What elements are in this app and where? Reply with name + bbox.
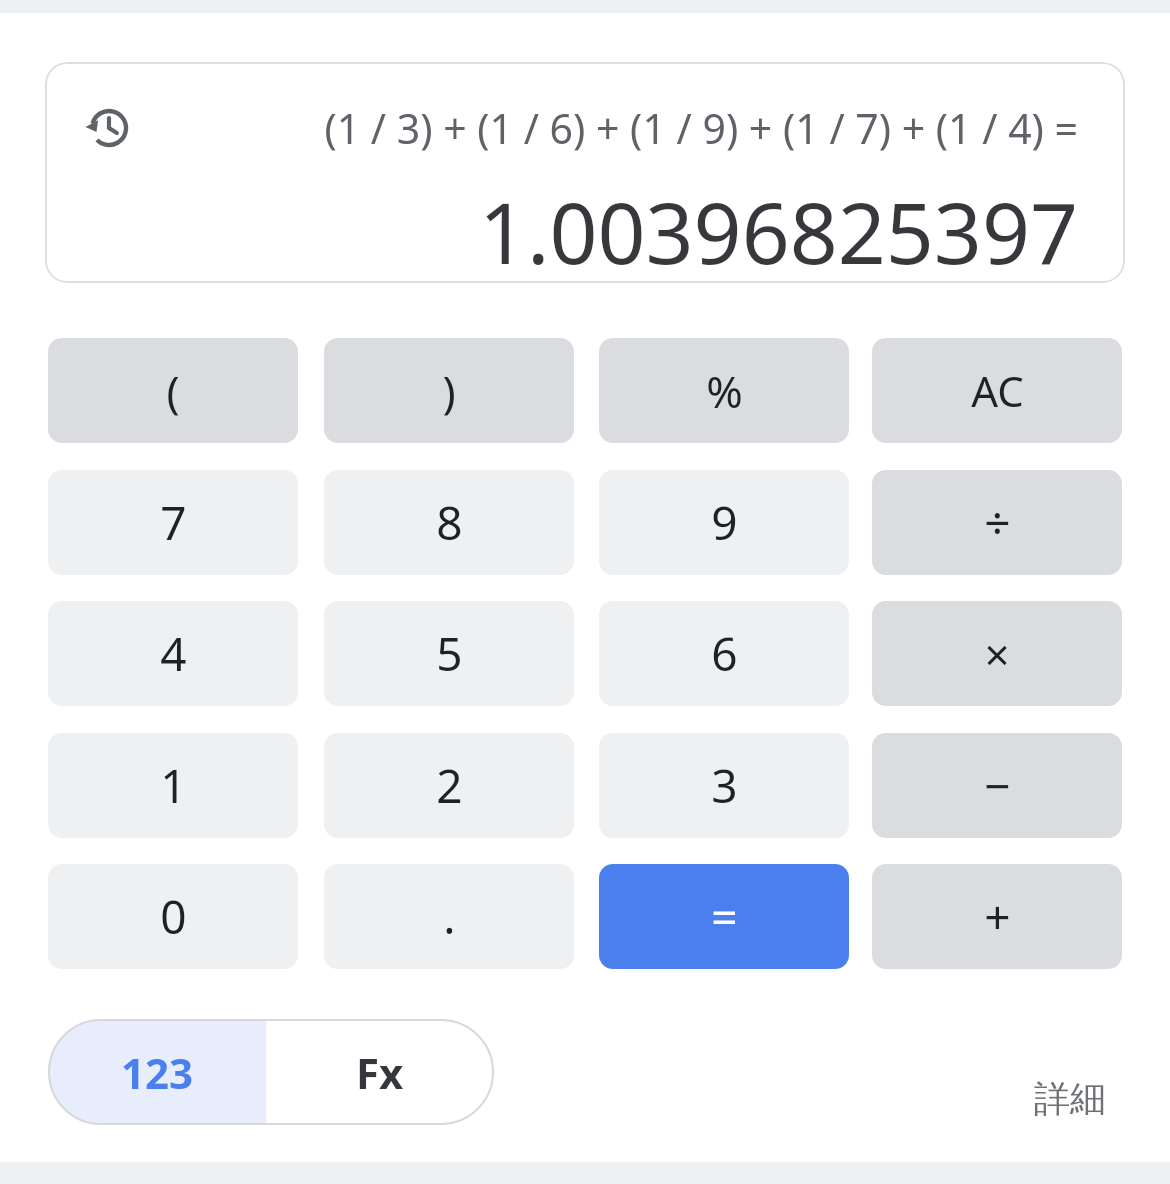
staticText: 8 bbox=[436, 491, 463, 554]
staticText: 3 bbox=[711, 754, 738, 817]
button[interactable]: 123 bbox=[48, 1019, 266, 1125]
button[interactable]: 7 bbox=[48, 470, 298, 575]
button[interactable]: ÷ bbox=[872, 470, 1122, 575]
staticText: 4 bbox=[160, 622, 187, 685]
staticText: 6 bbox=[711, 622, 738, 685]
staticText: 9 bbox=[711, 491, 738, 554]
button[interactable]: AC bbox=[872, 338, 1122, 443]
button[interactable]: × bbox=[872, 601, 1122, 706]
staticText: % bbox=[706, 361, 743, 421]
button[interactable]: + bbox=[872, 864, 1122, 969]
staticText: ) bbox=[442, 361, 456, 421]
button[interactable]: 8 bbox=[324, 470, 574, 575]
button[interactable]: 5 bbox=[324, 601, 574, 706]
button[interactable]: Fx bbox=[266, 1019, 494, 1125]
button[interactable]: . bbox=[324, 864, 574, 969]
staticText: × bbox=[984, 624, 1010, 684]
button[interactable]: History bbox=[75, 94, 143, 162]
staticText: 1 bbox=[160, 754, 187, 817]
staticText: . bbox=[443, 885, 456, 948]
button[interactable]: 詳細 bbox=[1020, 1068, 1120, 1129]
staticText: 1.00396825397 bbox=[478, 174, 1078, 283]
staticText: 7 bbox=[160, 491, 187, 554]
button[interactable]: 4 bbox=[48, 601, 298, 706]
button[interactable]: − bbox=[872, 733, 1122, 838]
staticText: + bbox=[984, 885, 1011, 948]
button[interactable]: 3 bbox=[599, 733, 849, 838]
button[interactable]: 1 bbox=[48, 733, 298, 838]
button[interactable]: ) bbox=[324, 338, 574, 443]
staticText: 詳細 bbox=[1034, 1076, 1106, 1121]
button[interactable]: 0 bbox=[48, 864, 298, 969]
button[interactable]: 2 bbox=[324, 733, 574, 838]
staticText: (1 / 3) + (1 / 6) + (1 / 9) + (1 / 7) + … bbox=[324, 100, 1078, 156]
button[interactable]: ( bbox=[48, 338, 298, 443]
button[interactable]: 6 bbox=[599, 601, 849, 706]
staticText: AC bbox=[971, 362, 1024, 419]
staticText: 123 bbox=[121, 1044, 194, 1101]
staticText: 0 bbox=[160, 885, 187, 948]
staticText: ÷ bbox=[984, 491, 1011, 554]
staticText: 5 bbox=[436, 622, 463, 685]
button[interactable]: % bbox=[599, 338, 849, 443]
staticText: 2 bbox=[436, 754, 463, 817]
staticText: − bbox=[984, 754, 1011, 817]
staticText: ( bbox=[166, 361, 180, 421]
staticText: Fx bbox=[356, 1044, 404, 1101]
staticText: = bbox=[711, 885, 738, 948]
button[interactable]: 9 bbox=[599, 470, 849, 575]
button[interactable]: = bbox=[599, 864, 849, 969]
